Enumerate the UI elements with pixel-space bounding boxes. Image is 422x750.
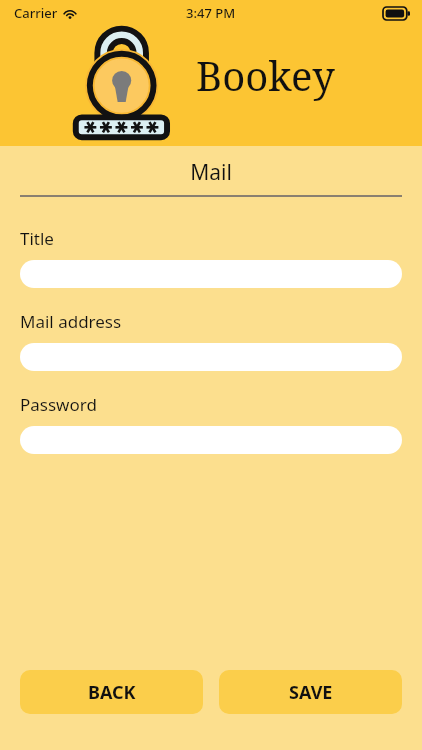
staticText: Mail bbox=[0, 158, 422, 187]
staticText: 3:47 PM bbox=[186, 4, 236, 22]
button[interactable]: BACK bbox=[20, 670, 203, 714]
staticText: Carrier bbox=[14, 4, 58, 22]
staticText: Mail address bbox=[20, 310, 122, 333]
staticText: SAVE bbox=[289, 680, 333, 705]
staticText: Bookey bbox=[196, 48, 335, 102]
staticText: BACK bbox=[88, 680, 136, 705]
button[interactable]: SAVE bbox=[219, 670, 402, 714]
staticText: Title bbox=[20, 227, 54, 250]
staticText: Password bbox=[20, 393, 97, 416]
button[interactable] bbox=[20, 343, 402, 371]
button[interactable] bbox=[20, 260, 402, 288]
button[interactable] bbox=[20, 426, 402, 454]
